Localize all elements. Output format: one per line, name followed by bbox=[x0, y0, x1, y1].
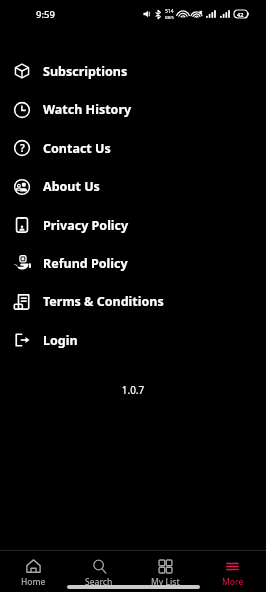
staticText: Login bbox=[43, 332, 78, 349]
button[interactable]: About Us bbox=[0, 167, 266, 206]
staticText: Search bbox=[85, 576, 113, 588]
button[interactable]: Refund Policy bbox=[0, 244, 266, 282]
staticText: About Us bbox=[43, 178, 100, 195]
staticText: Subscriptions bbox=[43, 63, 128, 80]
staticText: Watch History bbox=[43, 101, 132, 118]
staticText: KB/S bbox=[165, 15, 174, 20]
button[interactable]: Privacy Policy bbox=[0, 206, 266, 244]
staticText: 9:59 bbox=[36, 8, 55, 21]
staticText: 1.0.7 bbox=[0, 383, 266, 397]
button[interactable]: Subscriptions bbox=[0, 52, 266, 90]
button[interactable]: Home bbox=[0, 550, 66, 592]
staticText: Terms & Conditions bbox=[43, 293, 164, 310]
button[interactable]: Watch History bbox=[0, 90, 266, 129]
staticText: Privacy Policy bbox=[43, 217, 129, 234]
staticText: Home bbox=[21, 576, 46, 588]
staticText: More bbox=[222, 576, 244, 588]
button[interactable]: Terms & Conditions bbox=[0, 282, 266, 321]
staticText: Refund Policy bbox=[43, 255, 128, 272]
button[interactable]: Search bbox=[66, 550, 132, 592]
button[interactable]: My List bbox=[132, 550, 199, 592]
button[interactable]: ? bbox=[0, 129, 266, 167]
staticText: 514 bbox=[165, 8, 174, 15]
staticText: ? bbox=[20, 141, 25, 155]
staticText: My List bbox=[151, 576, 180, 588]
button[interactable]: Login bbox=[0, 321, 266, 359]
staticText: Contact Us bbox=[43, 140, 111, 157]
staticText: 42 bbox=[237, 11, 244, 18]
button[interactable]: More bbox=[199, 550, 266, 592]
